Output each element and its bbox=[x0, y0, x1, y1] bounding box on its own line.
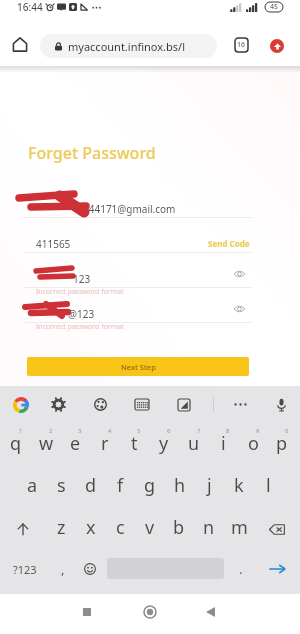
staticText: y bbox=[159, 431, 169, 456]
staticText: 45 bbox=[270, 2, 279, 12]
button[interactable]: a bbox=[17, 464, 47, 506]
button[interactable]: i bbox=[208, 422, 238, 464]
staticText: , bbox=[61, 560, 65, 578]
button[interactable]: h bbox=[165, 464, 195, 506]
button[interactable]: o bbox=[238, 422, 268, 464]
button[interactable]: m bbox=[224, 506, 254, 548]
button[interactable]: Period bbox=[228, 549, 253, 589]
button[interactable]: v bbox=[135, 506, 165, 548]
button[interactable]: Update available bbox=[264, 33, 289, 58]
button[interactable]: Themes bbox=[92, 396, 109, 413]
staticText: 16 bbox=[237, 40, 246, 50]
staticText: m bbox=[231, 515, 248, 540]
staticText: f bbox=[117, 473, 124, 498]
staticText: v bbox=[145, 515, 155, 540]
button[interactable]: c bbox=[105, 506, 135, 548]
button[interactable]: j bbox=[194, 464, 224, 506]
button[interactable]: u bbox=[179, 422, 209, 464]
staticText: a bbox=[27, 473, 38, 498]
button[interactable]: Next Step bbox=[27, 357, 249, 376]
staticText: g bbox=[144, 473, 156, 498]
button[interactable]: x bbox=[76, 506, 106, 548]
staticText: p bbox=[276, 431, 288, 456]
button[interactable]: Toggle password visibility bbox=[231, 266, 247, 282]
staticText: myaccount.infinox.bs/l bbox=[68, 39, 186, 54]
staticText: z bbox=[57, 515, 66, 540]
staticText: 5 bbox=[137, 427, 141, 435]
staticText: 411565 bbox=[36, 237, 71, 251]
button[interactable]: Tabs bbox=[230, 33, 253, 56]
staticText: Forget Password bbox=[28, 142, 156, 164]
staticText: Send Code bbox=[208, 238, 250, 249]
button[interactable]: g bbox=[135, 464, 165, 506]
button[interactable]: Back bbox=[195, 597, 225, 627]
button[interactable]: f bbox=[105, 464, 135, 506]
staticText: Incorrect password format bbox=[36, 287, 124, 297]
staticText: 244171@gmail.com bbox=[83, 202, 176, 216]
staticText: Next Step bbox=[121, 362, 156, 372]
staticText: s bbox=[57, 473, 66, 498]
button[interactable]: Recents bbox=[72, 597, 102, 627]
button[interactable]: Comma bbox=[49, 549, 76, 589]
button[interactable]: Settings bbox=[50, 396, 67, 413]
button[interactable]: Toggle password visibility bbox=[231, 301, 247, 317]
button[interactable]: More options bbox=[232, 396, 249, 413]
button[interactable]: Stickers bbox=[133, 396, 150, 413]
staticText: j bbox=[207, 473, 212, 498]
staticText: 8 bbox=[226, 427, 230, 435]
staticText: h bbox=[174, 473, 186, 498]
staticText: i bbox=[221, 431, 226, 456]
button[interactable]: t bbox=[119, 422, 149, 464]
button[interactable]: s bbox=[46, 464, 76, 506]
button[interactable]: e bbox=[60, 422, 90, 464]
staticText: d bbox=[85, 473, 97, 498]
staticText: . bbox=[239, 560, 243, 578]
button[interactable]: b bbox=[164, 506, 194, 548]
button[interactable]: Send Code bbox=[205, 236, 250, 250]
staticText: 123 bbox=[73, 272, 91, 286]
staticText: r bbox=[101, 431, 109, 456]
staticText: k bbox=[234, 473, 244, 498]
staticText: Incorrect password format bbox=[36, 322, 124, 332]
staticText: 7 bbox=[197, 427, 201, 435]
button[interactable]: ?123 bbox=[0, 549, 49, 589]
staticText: 6 bbox=[167, 427, 171, 435]
staticText: b bbox=[173, 515, 185, 540]
button[interactable]: w bbox=[31, 422, 61, 464]
staticText: 9 bbox=[256, 427, 260, 435]
button[interactable]: Clipboard bbox=[175, 396, 192, 413]
button[interactable]: y bbox=[149, 422, 179, 464]
button[interactable]: q bbox=[1, 422, 31, 464]
staticText: 0 bbox=[285, 427, 289, 435]
staticText: ?123 bbox=[13, 562, 37, 577]
staticText: 16:44 bbox=[17, 0, 43, 14]
button[interactable]: Emoji bbox=[76, 549, 103, 589]
staticText: e bbox=[70, 431, 81, 456]
staticText: n bbox=[203, 515, 215, 540]
button[interactable]: d bbox=[76, 464, 106, 506]
staticText: x bbox=[86, 515, 96, 540]
staticText: 3 bbox=[78, 427, 82, 435]
button[interactable]: Enter bbox=[257, 549, 297, 589]
button[interactable]: Google bbox=[12, 396, 29, 413]
button[interactable]: Backspace bbox=[256, 508, 298, 550]
staticText: c bbox=[116, 515, 125, 540]
button[interactable]: p bbox=[267, 422, 297, 464]
staticText: 4 bbox=[108, 427, 112, 435]
button[interactable]: l bbox=[253, 464, 283, 506]
button[interactable]: n bbox=[194, 506, 224, 548]
staticText: q bbox=[10, 431, 22, 456]
button[interactable]: k bbox=[224, 464, 254, 506]
staticText: l bbox=[266, 473, 271, 498]
button[interactable]: Home bbox=[8, 33, 31, 56]
button[interactable]: z bbox=[46, 506, 76, 548]
staticText: 2 bbox=[49, 427, 53, 435]
button[interactable]: Shift bbox=[2, 508, 44, 550]
staticText: w bbox=[39, 431, 54, 456]
button[interactable]: myaccount.infinox.bs/l bbox=[40, 34, 217, 58]
button[interactable]: r bbox=[90, 422, 120, 464]
staticText: o bbox=[248, 431, 259, 456]
button[interactable]: Home bbox=[135, 597, 165, 627]
button[interactable]: Voice input bbox=[273, 396, 290, 413]
